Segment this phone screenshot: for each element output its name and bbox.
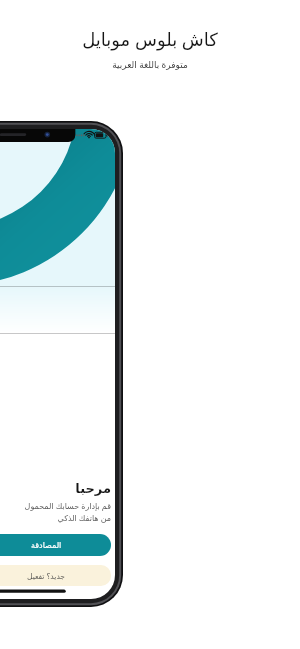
staticText: مرحبا (75, 481, 111, 496)
staticText: قم بإدارة حسابك المحمول من هاتفك الذكي (24, 500, 111, 523)
staticText: متوفرة باللغة العربية (112, 58, 188, 70)
button[interactable]: جديد؟ تفعيل (0, 565, 111, 586)
staticText: جديد؟ تفعيل (27, 571, 65, 581)
button[interactable]: المصادقة (0, 534, 111, 556)
staticText: كاش بلوس موبايل (82, 27, 218, 52)
staticText: المصادقة (31, 541, 62, 550)
